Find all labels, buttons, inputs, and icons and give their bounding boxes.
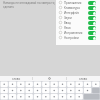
staticText: Исправления: [64, 31, 83, 35]
staticText: Ввод: [64, 21, 71, 25]
staticText: Язык: [64, 26, 71, 30]
button[interactable]: Settings: [33, 76, 66, 81]
button[interactable]: слово: [67, 76, 100, 81]
staticText: Никогда не откладывай на завтра то, что …: [3, 1, 56, 5]
button[interactable]: Ввод: [56, 20, 100, 25]
staticText: слово: [12, 77, 21, 81]
button[interactable]: Приложения: [56, 0, 100, 5]
button[interactable]: слово: [0, 76, 32, 81]
staticText: Звуки: [64, 16, 72, 20]
staticText: Настройки: [64, 36, 79, 40]
button[interactable]: Keyboard: [0, 81, 100, 100]
button[interactable]: Язык: [56, 25, 100, 30]
staticText: сделать: [3, 5, 14, 9]
staticText: слово: [79, 77, 88, 81]
other: Settings: [48, 77, 51, 80]
button[interactable]: Звуки: [56, 15, 100, 20]
staticText: Клавиатура: [64, 6, 80, 10]
staticText: Интерфейс: [64, 11, 80, 15]
button[interactable]: Исправления: [56, 30, 100, 35]
button[interactable]: Интерфейс: [56, 10, 100, 15]
staticText: Приложения: [64, 1, 82, 5]
button[interactable]: Клавиатура: [56, 5, 100, 10]
button[interactable]: Настройки: [56, 35, 100, 40]
